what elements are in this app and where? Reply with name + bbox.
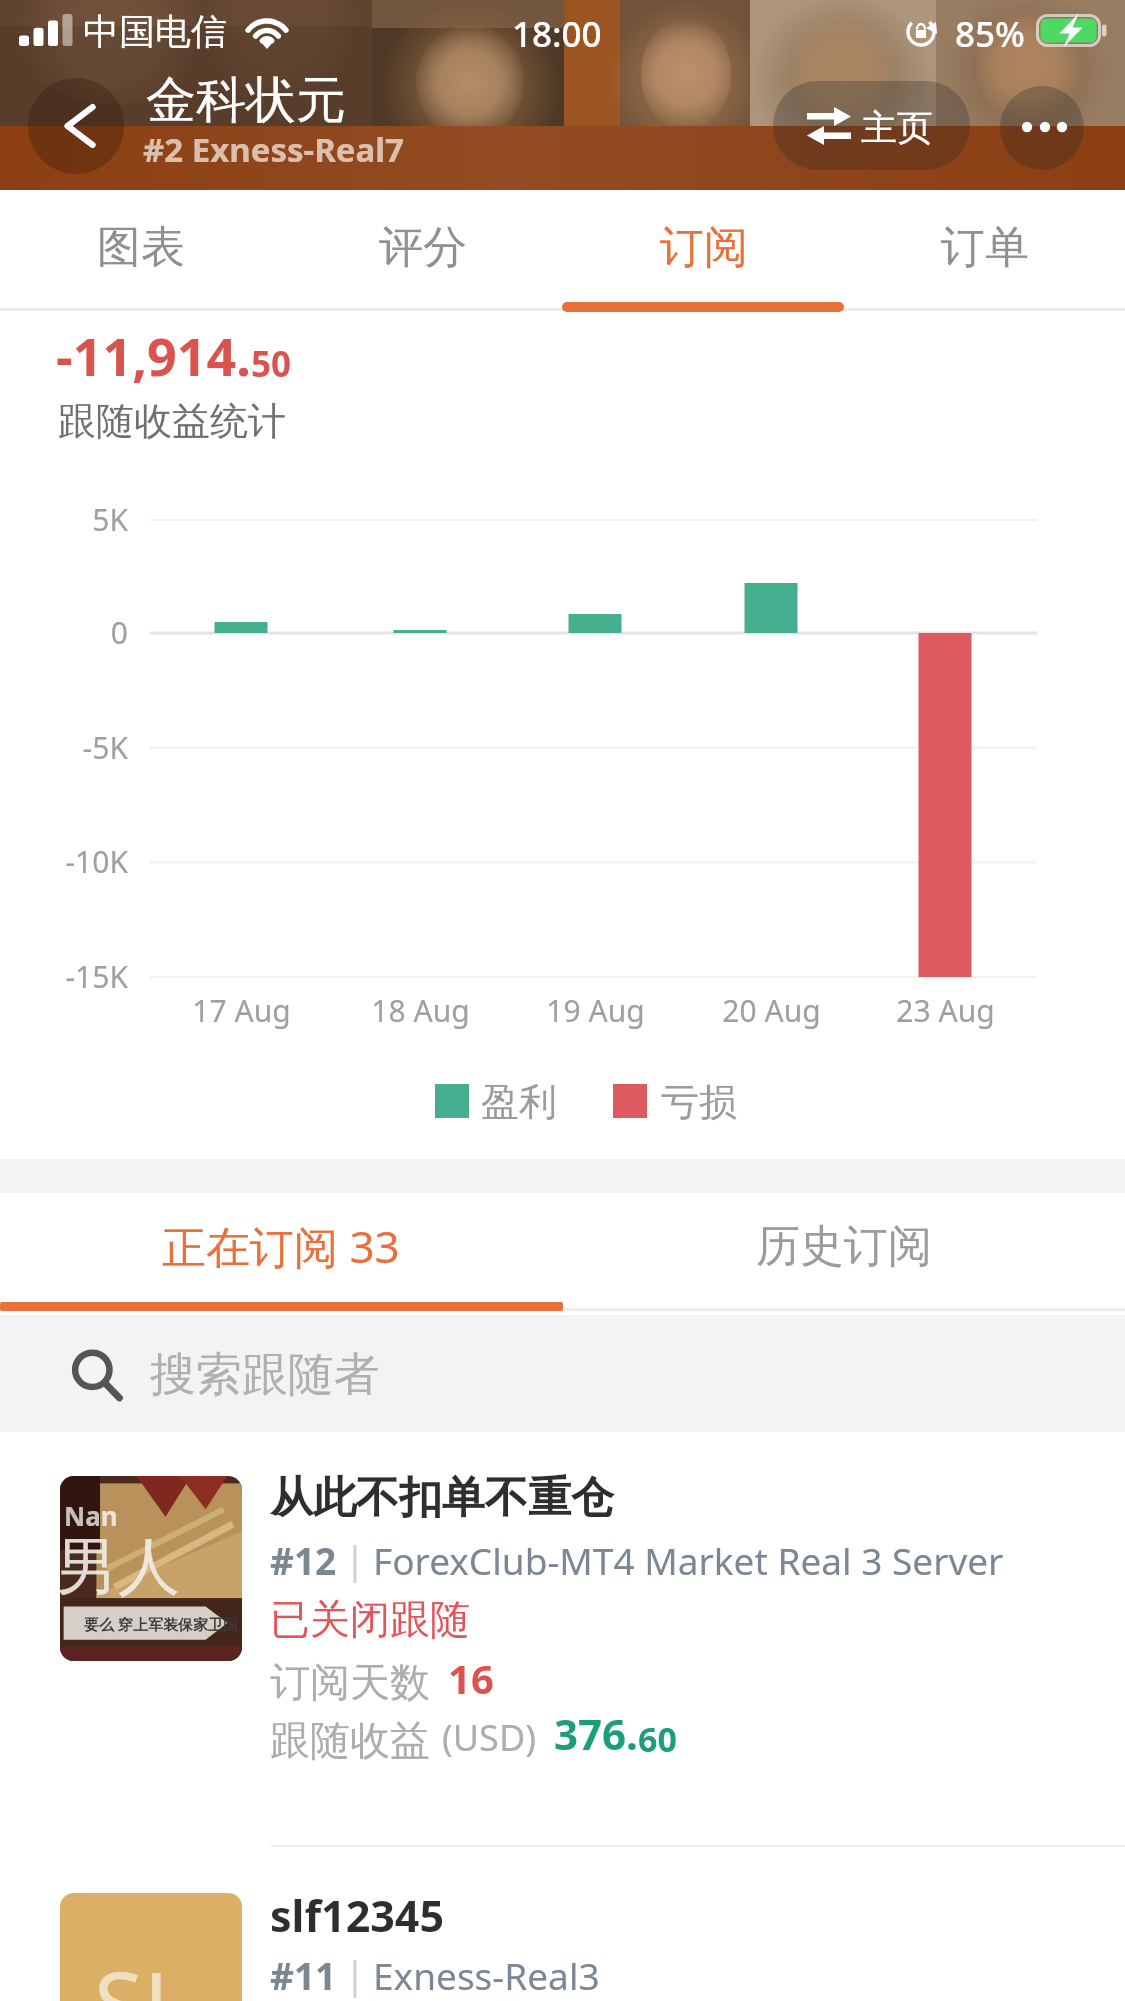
staticText: 金科状元 <box>146 69 346 132</box>
staticText: 376. <box>554 1705 638 1762</box>
button[interactable]: 图表 <box>0 190 282 313</box>
staticText: #12 <box>270 1535 337 1585</box>
staticText: 60 <box>638 1716 677 1762</box>
button[interactable]: 主页 <box>773 81 970 170</box>
button[interactable]: More options <box>1000 86 1084 170</box>
staticText: │ <box>337 1956 373 2000</box>
staticText: 18 Aug <box>371 990 470 1031</box>
staticText: 历史订阅 <box>756 1219 932 1274</box>
staticText: Nan <box>64 1498 118 1533</box>
button[interactable]: SL <box>0 1847 1125 2001</box>
staticText: 男人 <box>60 1528 180 1606</box>
staticText: 0 <box>110 612 128 653</box>
staticText: 要么 穿上军装保家卫国 <box>84 1614 238 1634</box>
button[interactable]: Back <box>28 78 124 174</box>
button[interactable]: Nan <box>0 1432 1125 1845</box>
staticText: 5K <box>92 499 128 540</box>
staticText: 16 <box>448 1651 494 1705</box>
staticText: 订阅天数 <box>270 1657 430 1707</box>
staticText: 中国电信 <box>83 9 227 54</box>
staticText: │ <box>337 1541 373 1585</box>
staticText: SL <box>94 1941 191 2001</box>
staticText: 20 Aug <box>722 990 821 1031</box>
staticText: 亏损 <box>661 1078 737 1126</box>
staticText: 85% <box>955 10 1025 58</box>
staticText: slf12345 <box>270 1886 445 1945</box>
button[interactable]: 正在订阅 33 <box>0 1193 562 1311</box>
staticText: -5K <box>82 727 128 768</box>
staticText: 订单 <box>941 220 1029 275</box>
button[interactable]: 搜索跟随者 <box>0 1315 1125 1432</box>
staticText: 50 <box>251 340 292 388</box>
staticText: 跟随收益统计 <box>58 397 286 445</box>
staticText: 从此不扣单不重仓 <box>270 1471 614 1525</box>
staticText: #11 <box>270 1950 337 2000</box>
staticText: Exness-Real3 <box>373 1950 600 2000</box>
button[interactable]: 历史订阅 <box>562 1193 1125 1311</box>
staticText: 23 Aug <box>896 990 995 1031</box>
staticText: (USD) <box>442 1713 536 1762</box>
staticText: 跟随收益 <box>270 1715 430 1765</box>
staticText: -11,914. <box>56 320 251 391</box>
staticText: 图表 <box>97 220 185 275</box>
staticText: 盈利 <box>481 1078 557 1126</box>
button[interactable]: 订单 <box>844 190 1125 313</box>
staticText: 19 Aug <box>546 990 645 1031</box>
staticText: 订阅 <box>660 220 748 275</box>
staticText: #2 Exness-Real7 <box>143 127 404 172</box>
staticText: 18:00 <box>512 10 602 58</box>
button[interactable]: 订阅 <box>563 190 844 313</box>
staticText: 已关闭跟随 <box>270 1594 470 1644</box>
staticText: ForexClub-MT4 Market Real 3 Server <box>373 1535 1004 1585</box>
staticText: 正在订阅 33 <box>162 1216 400 1276</box>
staticText: -10K <box>65 841 128 882</box>
staticText: 评分 <box>379 220 467 275</box>
staticText: 17 Aug <box>192 990 291 1031</box>
staticText: 搜索跟随者 <box>150 1346 380 1404</box>
staticText: -15K <box>65 956 128 997</box>
button[interactable]: 评分 <box>282 190 563 313</box>
staticText: 主页 <box>861 105 933 150</box>
